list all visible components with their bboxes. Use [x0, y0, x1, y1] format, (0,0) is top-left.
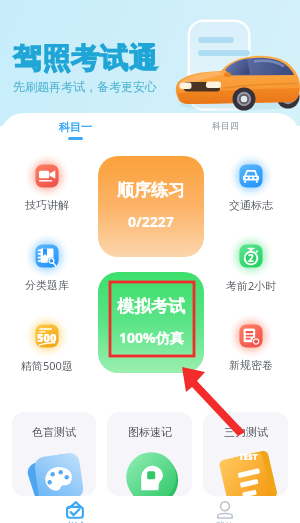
staticText: 模拟考试 — [117, 296, 185, 317]
button[interactable]: 分类题库 — [16, 234, 78, 292]
button[interactable]: 三力测试 — [203, 412, 288, 496]
staticText: 技巧讲解 — [25, 198, 69, 212]
button[interactable]: 2 — [220, 234, 282, 293]
staticText: 科目一 — [59, 120, 92, 134]
button[interactable]: 科目四 — [150, 120, 300, 144]
button[interactable]: 考试 — [0, 496, 150, 523]
staticText: 精简500题 — [21, 358, 73, 373]
button[interactable]: 图标速记 — [107, 412, 192, 496]
staticText: 考试 — [66, 520, 84, 523]
staticText: 考前2小时 — [226, 278, 277, 293]
button[interactable]: 交通标志 — [220, 154, 282, 212]
button[interactable]: 新规密卷 — [220, 314, 282, 372]
button[interactable]: 顺序练习 — [98, 156, 204, 257]
button[interactable]: 色盲测试 — [12, 412, 96, 496]
staticText: 0/2227 — [128, 212, 174, 231]
staticText: 2 — [248, 251, 254, 265]
staticText: 新规密卷 — [229, 358, 273, 372]
staticText: 我的 — [216, 520, 234, 523]
staticText: 三力测试 — [224, 425, 268, 439]
staticText: 色盲测试 — [32, 425, 76, 439]
staticText: 驾照考试通 — [13, 41, 158, 77]
staticText: 分类题库 — [25, 278, 69, 292]
button[interactable]: 500 — [16, 314, 78, 373]
staticText: 500 — [37, 330, 57, 345]
staticText: 先刷题再考试，备考更安心 — [13, 79, 157, 94]
button[interactable]: 我的 — [150, 496, 300, 523]
button[interactable]: 技巧讲解 — [16, 154, 78, 212]
button[interactable]: 模拟考试 — [98, 272, 204, 373]
staticText: 科目四 — [212, 120, 239, 131]
button[interactable]: 科目一 — [0, 120, 150, 144]
staticText: 顺序练习 — [117, 180, 185, 201]
staticText: 交通标志 — [229, 198, 273, 212]
staticText: 图标速记 — [128, 425, 172, 439]
staticText: TEST — [239, 451, 258, 462]
staticText: 100%仿真 — [119, 328, 184, 347]
